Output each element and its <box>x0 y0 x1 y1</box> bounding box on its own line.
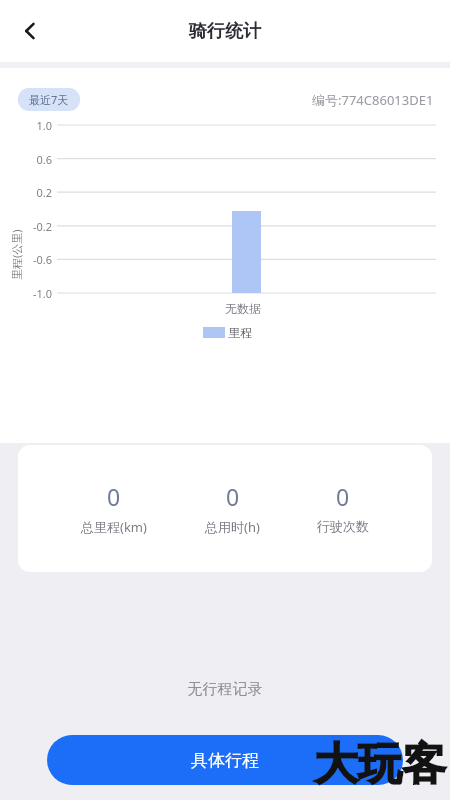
staticText: 0.2 <box>36 185 52 200</box>
button[interactable]: Back <box>8 9 52 53</box>
staticText: -0.6 <box>32 252 52 267</box>
staticText: 1.0 <box>36 118 52 133</box>
staticText: 具体行程 <box>191 750 259 771</box>
staticText: 0.6 <box>36 152 52 167</box>
staticText: 无数据 <box>225 301 261 316</box>
staticText: 最近7天 <box>29 92 69 107</box>
staticText: 骑行统计 <box>189 20 261 43</box>
button[interactable]: 具体行程 <box>47 735 403 785</box>
staticText: 0 <box>107 481 121 512</box>
staticText: 无行程记录 <box>0 680 450 699</box>
staticText: 总用时(h) <box>205 518 260 536</box>
staticText: 行驶次数 <box>317 518 369 534</box>
staticText: 里程 <box>228 325 252 340</box>
staticText: 大玩客 <box>314 737 446 792</box>
staticText: 编号:774C86013DE1 <box>312 91 434 109</box>
staticText: -0.2 <box>32 219 52 234</box>
staticText: 0 <box>226 481 240 512</box>
staticText: 总里程(km) <box>81 518 147 536</box>
staticText: -1.0 <box>32 286 52 301</box>
staticText: 里程(公里) <box>9 229 24 280</box>
button[interactable]: 最近7天 <box>18 88 80 111</box>
staticText: 0 <box>336 481 350 512</box>
